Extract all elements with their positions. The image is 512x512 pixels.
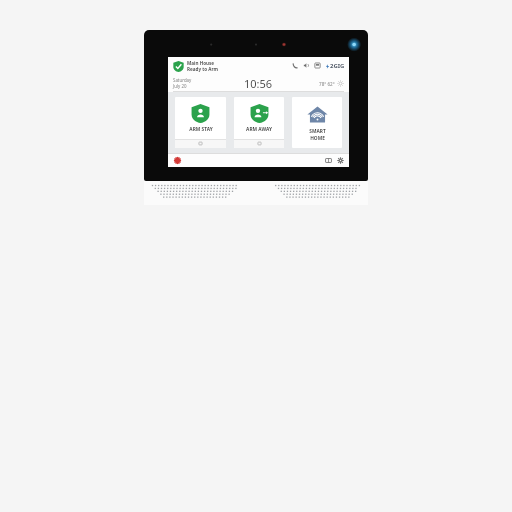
- staticText: Main House: [187, 60, 215, 66]
- button[interactable]: SMART: [292, 97, 342, 148]
- staticText: HOME: [310, 135, 325, 142]
- button[interactable]: ARM AWAY: [234, 97, 284, 148]
- staticText: 2GIG: [330, 62, 345, 70]
- staticText: SMART: [309, 128, 326, 135]
- button[interactable]: Emergency: [173, 156, 182, 165]
- staticText: ARM AWAY: [246, 126, 272, 133]
- button[interactable]: Settings: [337, 157, 344, 164]
- staticText: Saturday: [173, 77, 192, 83]
- staticText: ARM STAY: [189, 126, 213, 133]
- button[interactable]: Main House: [172, 59, 219, 73]
- button[interactable]: Volume: [303, 62, 310, 69]
- button[interactable]: ARM STAY: [175, 97, 226, 148]
- staticText: July 20: [173, 83, 187, 89]
- staticText: 10:56: [244, 76, 273, 91]
- button[interactable]: Messages: [325, 157, 332, 164]
- staticText: 78° 62°: [319, 81, 335, 87]
- staticText: Ready to Arm: [187, 66, 218, 72]
- button[interactable]: Phone: [292, 62, 299, 69]
- button[interactable]: Panel status: [314, 62, 321, 69]
